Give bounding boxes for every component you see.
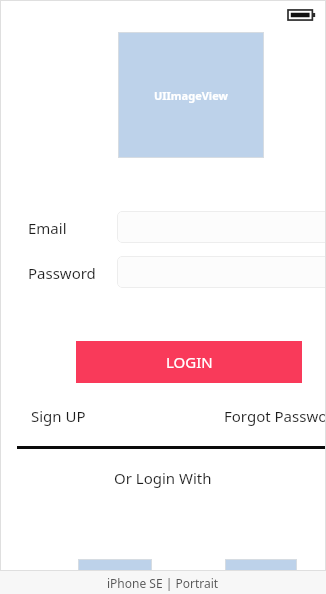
staticText: Forgot Password [224, 406, 326, 426]
button[interactable]: Sign UP [31, 406, 86, 426]
button[interactable]: UIImageView [118, 32, 264, 158]
button[interactable]: Password input [117, 256, 326, 288]
staticText: iPhone SE | Portrait [107, 575, 219, 591]
staticText: Email [28, 218, 67, 238]
staticText: Or Login With [114, 468, 212, 488]
button[interactable]: Login with Facebook [78, 559, 152, 589]
button[interactable]: Email input [117, 211, 326, 243]
button[interactable]: LOGIN [76, 341, 302, 383]
button[interactable]: Battery [288, 8, 316, 22]
staticText: LOGIN [166, 352, 213, 372]
staticText: Sign UP [31, 406, 86, 426]
button[interactable]: Login with Google [225, 559, 297, 589]
button[interactable]: Forgot Password [224, 406, 326, 426]
staticText: UIImageView [154, 88, 228, 103]
staticText: Password [28, 263, 96, 283]
